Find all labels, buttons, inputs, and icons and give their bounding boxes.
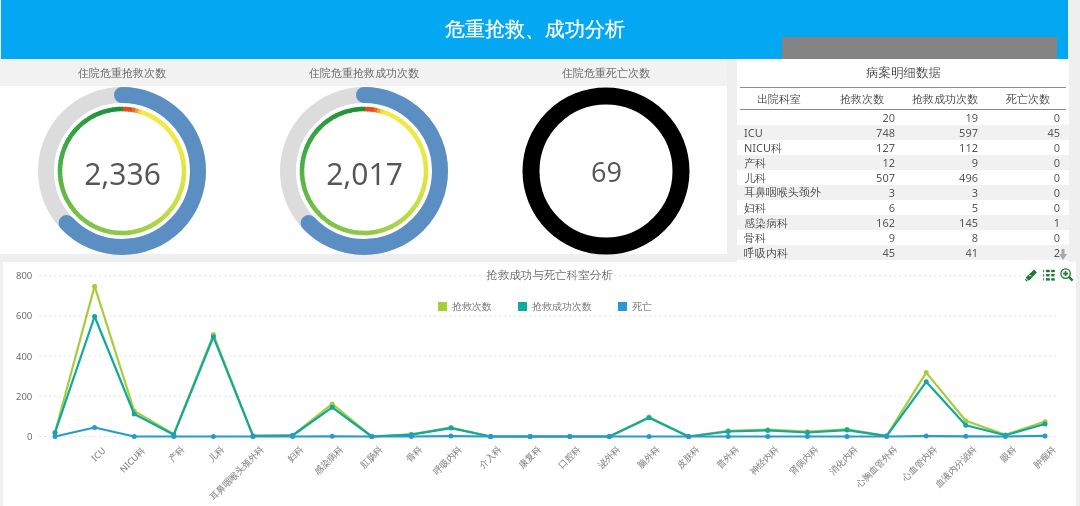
button[interactable]: Edit <box>1024 268 1039 283</box>
staticText: 597 <box>959 125 978 140</box>
button[interactable]: 抢救次数 <box>438 300 492 313</box>
staticText: 呼吸内科 <box>744 246 788 260</box>
staticText: 0 <box>1053 140 1060 155</box>
staticText: 9 <box>888 230 895 245</box>
button[interactable]: 抢救成功次数 <box>518 300 592 313</box>
staticText: 2,017 <box>326 153 403 194</box>
staticText: 耳鼻咽喉头颈外科 <box>744 185 821 200</box>
button[interactable]: 儿科 <box>737 170 1069 185</box>
staticText: 45 <box>882 245 895 260</box>
staticText: 住院危重抢救次数 <box>78 66 166 80</box>
button[interactable]: 产科 <box>737 155 1069 170</box>
staticText: 0 <box>1053 230 1060 245</box>
staticText: 45 <box>1047 125 1060 140</box>
button[interactable]: 20 <box>737 110 1069 125</box>
staticText: 死亡次数 <box>1006 92 1050 106</box>
staticText: 抢救成功次数 <box>532 300 592 313</box>
button[interactable]: 耳鼻咽喉头颈外科 <box>737 185 1069 200</box>
staticText: 抢救成功次数 <box>912 92 978 106</box>
staticText: 1 <box>1053 215 1060 230</box>
button[interactable]: 骨科 <box>737 230 1069 245</box>
staticText: 0 <box>1053 200 1060 215</box>
button[interactable]: Zoom in <box>1060 268 1075 283</box>
button[interactable]: 妇科 <box>737 200 1069 215</box>
staticText: 0 <box>1053 170 1060 185</box>
staticText: 抢救次数 <box>452 300 492 313</box>
staticText: 出院科室 <box>757 92 801 106</box>
staticText: 8 <box>971 230 978 245</box>
staticText: 骨科 <box>744 231 766 245</box>
staticText: 2,336 <box>84 153 161 194</box>
staticText: 0 <box>1053 110 1060 125</box>
staticText: 0 <box>1053 185 1060 200</box>
button[interactable]: 呼吸内科 <box>737 245 1069 260</box>
staticText: 住院危重抢救成功次数 <box>309 66 419 80</box>
staticText: 496 <box>959 170 978 185</box>
button[interactable]: List <box>1042 268 1057 283</box>
staticText: 感染病科 <box>744 216 788 230</box>
staticText: 112 <box>959 140 978 155</box>
staticText: 20 <box>882 110 895 125</box>
button[interactable]: 感染病科 <box>737 215 1069 230</box>
staticText: 0 <box>1053 155 1060 170</box>
button[interactable]: 69 <box>520 87 692 255</box>
button[interactable]: NICU科 <box>737 140 1069 155</box>
staticText: 病案明细数据 <box>866 65 941 81</box>
button[interactable]: 2,017 <box>278 87 450 255</box>
staticText: 死亡 <box>632 300 652 313</box>
staticText: 127 <box>876 140 895 155</box>
staticText: 危重抢救、成功分析 <box>445 17 625 42</box>
staticText: 儿科 <box>744 171 766 185</box>
staticText: 抢救成功与死亡科室分析 <box>486 268 613 282</box>
staticText: 69 <box>591 153 622 190</box>
staticText: 145 <box>959 215 978 230</box>
staticText: NICU科 <box>744 140 783 155</box>
staticText: 住院危重死亡次数 <box>562 66 650 80</box>
button[interactable]: 死亡 <box>618 300 652 313</box>
staticText: 6 <box>888 200 895 215</box>
staticText: 抢救次数 <box>840 92 884 106</box>
staticText: 妇科 <box>744 201 766 215</box>
staticText: 9 <box>971 155 978 170</box>
staticText: 2 <box>1053 245 1060 260</box>
staticText: 5 <box>971 200 978 215</box>
staticText: 507 <box>876 170 895 185</box>
staticText: ICU <box>744 125 763 140</box>
button[interactable]: ICU <box>737 125 1069 140</box>
staticText: 19 <box>965 110 978 125</box>
button[interactable]: 2,336 <box>36 87 208 255</box>
staticText: 3 <box>971 185 978 200</box>
staticText: 12 <box>882 155 895 170</box>
staticText: 41 <box>965 245 978 260</box>
staticText: 748 <box>876 125 895 140</box>
staticText: 3 <box>888 185 895 200</box>
staticText: 162 <box>876 215 895 230</box>
staticText: 产科 <box>744 156 766 170</box>
